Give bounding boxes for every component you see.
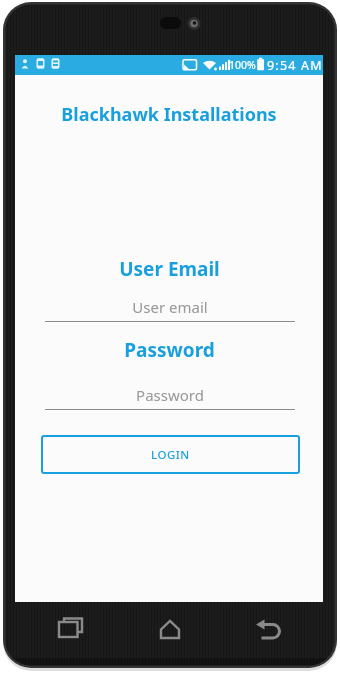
button[interactable]: Password [45,379,295,411]
button[interactable] [46,606,95,652]
staticText: LOGIN [151,447,190,463]
staticText: Password [124,337,215,363]
staticText: 9:54 AM [267,57,323,74]
staticText: User Email [119,256,220,282]
staticText: 100% [229,58,256,72]
staticText: Password [136,385,204,405]
button[interactable]: LOGIN [41,435,300,474]
button[interactable] [146,606,194,652]
staticText: Blackhawk Installations [61,102,277,127]
button[interactable] [245,606,293,652]
button[interactable]: User email [45,291,295,323]
staticText: User email [132,297,208,317]
